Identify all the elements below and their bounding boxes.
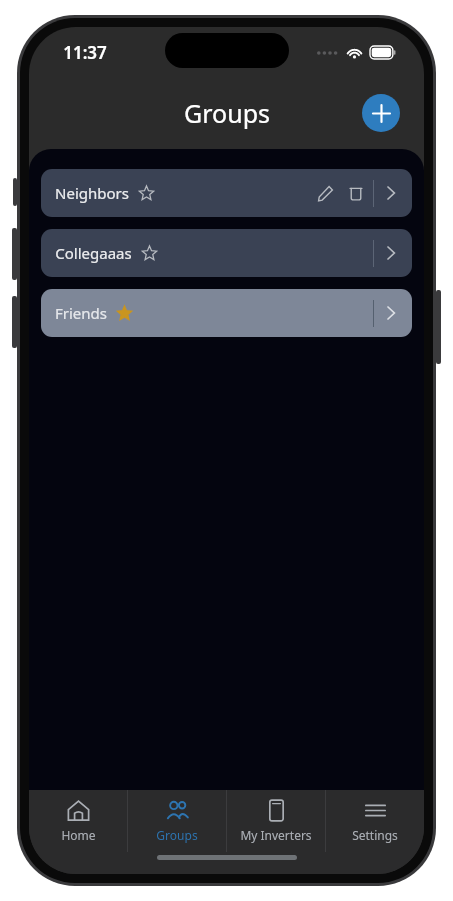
button[interactable]: Edit bbox=[312, 180, 338, 206]
button[interactable]: Favorite bbox=[139, 243, 159, 263]
button[interactable]: Open group bbox=[374, 296, 408, 330]
button[interactable]: My Inverters bbox=[227, 799, 325, 843]
button[interactable]: Neighbors bbox=[41, 169, 412, 217]
staticText: Home bbox=[61, 827, 96, 843]
button[interactable]: Settings bbox=[326, 799, 424, 843]
staticText: Collegaaas bbox=[55, 243, 132, 263]
staticText: Groups bbox=[156, 827, 198, 843]
button[interactable]: Friends bbox=[41, 289, 412, 337]
button[interactable]: Favorite bbox=[136, 183, 156, 203]
button[interactable]: Favorite bbox=[114, 303, 134, 323]
button[interactable]: Delete bbox=[343, 180, 369, 206]
staticText: My Inverters bbox=[240, 827, 312, 843]
staticText: Neighbors bbox=[55, 183, 129, 203]
staticText: Settings bbox=[352, 827, 398, 843]
staticText: Friends bbox=[55, 303, 107, 323]
staticText: Groups bbox=[184, 96, 270, 130]
button[interactable]: Groups bbox=[128, 799, 226, 843]
button[interactable]: Open group bbox=[374, 236, 408, 270]
staticText: 11:37 bbox=[63, 41, 107, 64]
button[interactable]: Home bbox=[29, 799, 127, 843]
button[interactable]: Open group bbox=[374, 176, 408, 210]
button[interactable]: Add group bbox=[362, 94, 400, 132]
button[interactable]: Collegaaas bbox=[41, 229, 412, 277]
